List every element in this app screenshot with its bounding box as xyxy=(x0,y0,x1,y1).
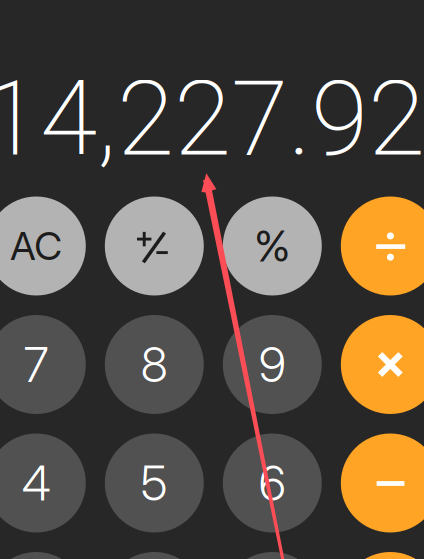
staticText: 4 xyxy=(22,454,51,512)
button[interactable]: 7 xyxy=(0,315,86,414)
button[interactable]: 3 xyxy=(223,552,322,559)
staticText: % xyxy=(254,220,290,272)
button[interactable] xyxy=(341,552,424,559)
button[interactable] xyxy=(341,315,424,414)
button[interactable]: 9 xyxy=(223,315,322,414)
button[interactable] xyxy=(341,433,424,532)
button[interactable]: 5 xyxy=(105,433,204,532)
staticText: 5 xyxy=(141,454,168,512)
button[interactable] xyxy=(341,196,424,295)
button[interactable]: 2 xyxy=(105,552,204,559)
button[interactable]: 4 xyxy=(0,433,86,532)
button[interactable]: 8 xyxy=(105,315,204,414)
staticText: 6 xyxy=(259,454,286,512)
staticText: AC xyxy=(10,223,62,269)
button[interactable]: AC xyxy=(0,196,86,295)
button[interactable] xyxy=(105,196,204,295)
button[interactable]: % xyxy=(223,196,322,295)
staticText: 8 xyxy=(141,335,168,394)
button[interactable]: 1 xyxy=(0,552,86,559)
staticText: 14,227.92 xyxy=(0,58,424,180)
button[interactable]: 6 xyxy=(223,433,322,532)
staticText: 7 xyxy=(24,335,49,394)
staticText: 9 xyxy=(259,335,286,394)
